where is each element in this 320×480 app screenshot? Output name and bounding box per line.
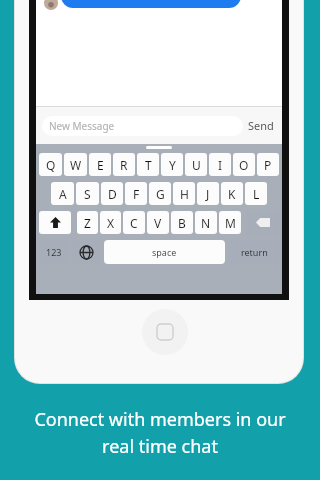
button[interactable]: O	[233, 153, 255, 176]
staticText: K	[228, 186, 236, 202]
button[interactable]: E	[89, 153, 111, 176]
staticText: P	[264, 157, 272, 173]
staticText: X	[107, 215, 115, 231]
staticText: Y	[169, 157, 176, 173]
button[interactable]: U	[185, 153, 207, 176]
button[interactable]: space	[104, 240, 225, 264]
button[interactable]: Delete	[247, 211, 279, 234]
staticText: F	[133, 186, 140, 202]
staticText: G	[156, 186, 165, 202]
staticText: M	[225, 215, 236, 231]
staticText: space	[152, 246, 177, 258]
button[interactable]: P	[257, 153, 279, 176]
button[interactable]: T	[137, 153, 159, 176]
button[interactable]: J	[197, 182, 219, 205]
button[interactable]: V	[147, 211, 169, 234]
staticText: D	[108, 186, 117, 202]
button[interactable]: Shift	[39, 211, 71, 234]
staticText: U	[192, 157, 201, 173]
button[interactable]: H	[173, 182, 195, 205]
button[interactable]: I	[209, 153, 231, 176]
button[interactable]: N	[195, 211, 217, 234]
button[interactable]: R	[113, 153, 135, 176]
button[interactable]: M	[219, 211, 241, 234]
staticText: I	[218, 157, 223, 173]
button[interactable]: B	[171, 211, 193, 234]
staticText: New Message	[49, 119, 115, 133]
button[interactable]: 123	[39, 240, 68, 264]
button[interactable]: Home	[142, 309, 188, 355]
button[interactable]: F	[125, 182, 147, 205]
staticText: Q	[46, 157, 56, 173]
button[interactable]: Emoji / language	[72, 241, 100, 264]
button[interactable]: Send	[248, 118, 274, 133]
staticText: Z	[84, 215, 91, 231]
staticText: S	[84, 186, 91, 202]
button[interactable]: W	[64, 153, 87, 176]
staticText: J	[206, 186, 210, 202]
staticText: Send	[248, 118, 274, 133]
button[interactable]: return	[229, 240, 279, 264]
staticText: return	[241, 246, 268, 258]
staticText: V	[154, 215, 162, 231]
staticText: O	[239, 157, 249, 173]
staticText: C	[130, 215, 138, 231]
staticText: N	[201, 215, 211, 231]
staticText: H	[180, 186, 189, 202]
button[interactable]: L	[245, 182, 267, 205]
button[interactable]: Q	[39, 153, 62, 176]
staticText: L	[253, 186, 260, 202]
staticText: R	[120, 157, 128, 173]
staticText: 123	[46, 246, 62, 258]
button[interactable]: New Message	[42, 116, 243, 136]
button[interactable]: S	[76, 182, 99, 205]
staticText: E	[97, 157, 104, 173]
button[interactable]: K	[221, 182, 243, 205]
staticText: A	[59, 186, 67, 202]
staticText: B	[178, 215, 186, 231]
button[interactable]: X	[100, 211, 121, 234]
button[interactable]: A	[51, 182, 74, 205]
button[interactable]: C	[123, 211, 145, 234]
staticText: W	[70, 157, 82, 173]
staticText: T	[145, 157, 152, 173]
button[interactable]: D	[101, 182, 123, 205]
staticText: Connect with members in our real time ch…	[34, 407, 286, 458]
button[interactable]: Z	[77, 211, 98, 234]
button[interactable]: G	[149, 182, 171, 205]
button[interactable]: Y	[161, 153, 183, 176]
